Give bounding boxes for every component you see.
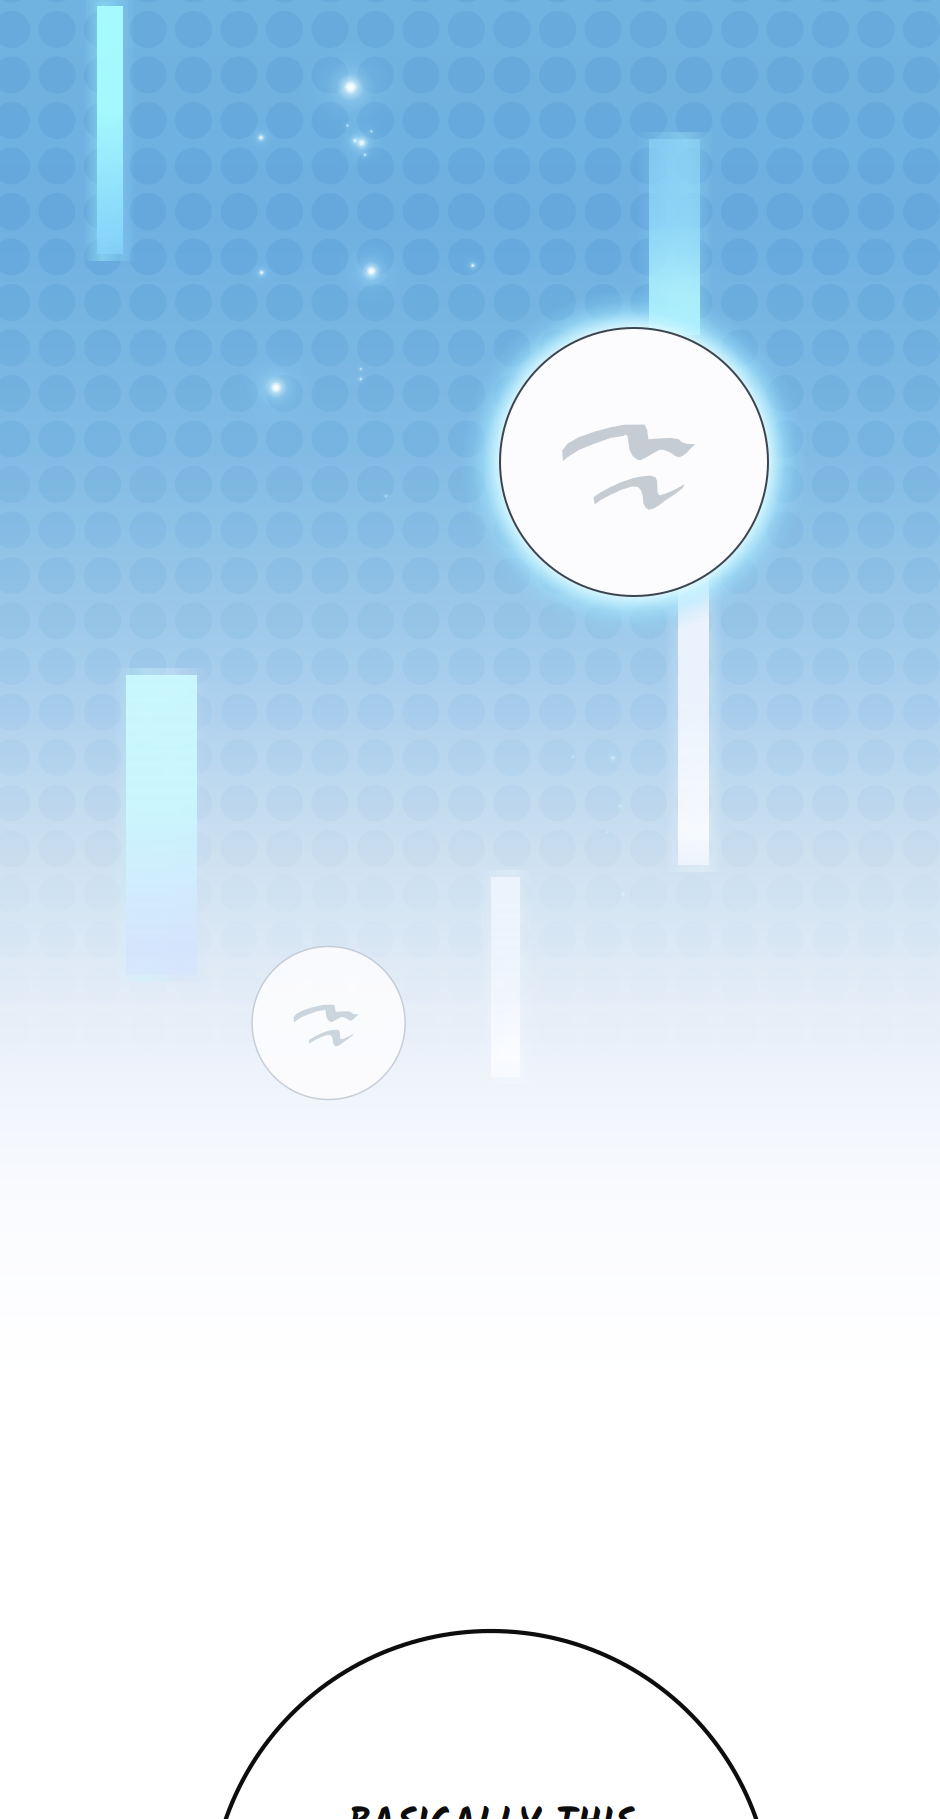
staticText: BASICALLY THIS xyxy=(347,1795,634,1819)
